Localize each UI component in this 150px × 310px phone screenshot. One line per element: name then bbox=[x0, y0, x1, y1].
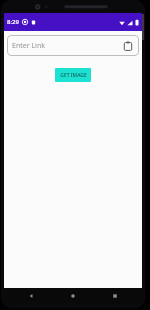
staticText: Enter Link bbox=[12, 41, 121, 51]
button[interactable]: Enter Link bbox=[7, 35, 139, 56]
button[interactable]: Back bbox=[16, 288, 46, 304]
staticText: 8:29 bbox=[7, 18, 19, 26]
button[interactable]: Paste from clipboard bbox=[121, 39, 134, 52]
button[interactable]: Recent apps bbox=[100, 288, 130, 304]
button[interactable]: GET IMAGE bbox=[55, 68, 91, 82]
button[interactable]: Home bbox=[58, 288, 88, 304]
staticText: GET IMAGE bbox=[60, 72, 87, 79]
